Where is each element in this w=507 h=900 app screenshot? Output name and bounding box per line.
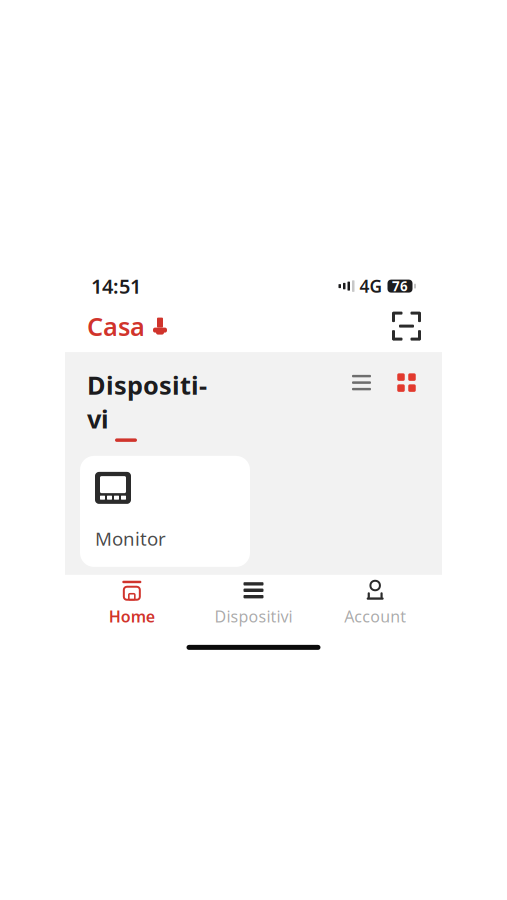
button[interactable]: List view — [348, 371, 375, 395]
staticText: Home — [109, 606, 155, 627]
staticText: Dispositivi — [214, 606, 292, 627]
button[interactable]: Grid view — [393, 369, 420, 396]
staticText: 76 — [392, 277, 408, 295]
button[interactable]: Account — [314, 574, 436, 634]
staticText: Casa — [87, 309, 145, 343]
staticText: Dispositivi — [87, 368, 207, 435]
button[interactable]: Scan QR code — [393, 313, 420, 340]
button[interactable]: Monitor — [80, 456, 250, 567]
button[interactable]: Dispositivi — [193, 574, 314, 634]
staticText: Account — [344, 606, 406, 627]
staticText: 14:51 — [91, 273, 141, 299]
staticText: 4G — [359, 275, 382, 298]
button[interactable]: Home — [71, 574, 193, 634]
staticText: Monitor — [95, 526, 166, 551]
button[interactable]: Casa — [87, 304, 167, 348]
